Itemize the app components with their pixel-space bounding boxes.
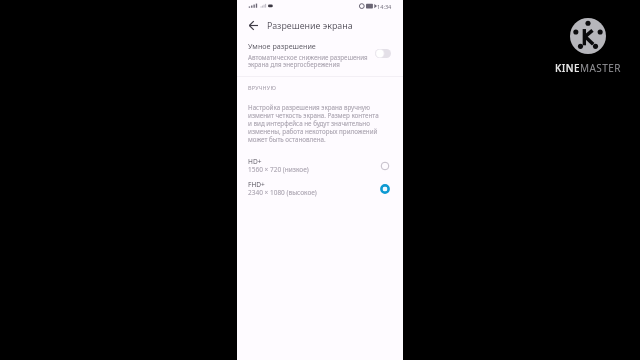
staticText: 1560 × 720 (низкое) — [248, 165, 309, 174]
staticText: MASTER — [580, 61, 621, 75]
staticText: 14:34 — [377, 3, 392, 11]
button[interactable]: FHD+ — [237, 178, 403, 200]
staticText: ВРУЧНУЮ — [248, 84, 277, 91]
button[interactable]: Back — [245, 17, 262, 34]
staticText: Автоматическое снижение разрешения экран… — [248, 53, 368, 69]
staticText: Настройка разрешения экрана вручную изме… — [248, 103, 379, 143]
staticText: 2340 × 1080 (высокое) — [248, 188, 317, 197]
button[interactable]: Умное разрешение — [237, 39, 403, 71]
staticText: Разрешение экрана — [267, 19, 353, 31]
staticText: Умное разрешение — [248, 41, 316, 51]
staticText: HD+ — [248, 157, 262, 166]
staticText: KINE — [555, 61, 580, 75]
staticText: FHD+ — [248, 180, 265, 189]
button[interactable]: HD+ — [237, 155, 403, 177]
